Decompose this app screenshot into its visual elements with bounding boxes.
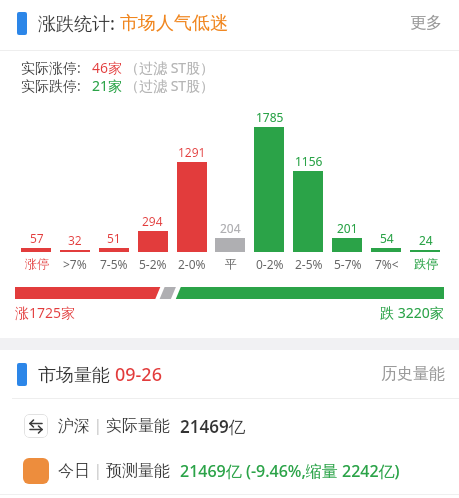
staticText: 46家 (92, 58, 123, 77)
staticText: 涨停 (25, 256, 49, 271)
staticText: 市场量能 (38, 362, 115, 387)
staticText: 294 (142, 213, 163, 229)
staticText: ｜ (90, 461, 106, 481)
staticText: （过滤 ST股） (125, 58, 215, 77)
staticText: 历史量能 (381, 364, 445, 384)
button[interactable]: 更多 (410, 13, 442, 33)
staticText: 实际跌停: (21, 76, 81, 95)
staticText: 21469亿 (-9.46%,缩量 2242亿) (180, 460, 400, 482)
staticText: >7% (63, 256, 87, 272)
staticText: 今日 (58, 461, 90, 481)
staticText: 7-5% (100, 256, 128, 272)
staticText: 32 (68, 232, 82, 248)
staticText: 24 (419, 232, 433, 248)
staticText: 09-26 (115, 362, 162, 387)
button[interactable]: 沪深 (0, 408, 459, 444)
staticText: 51 (107, 230, 121, 246)
staticText: 21家 (92, 76, 123, 95)
staticText: 1156 (295, 153, 323, 169)
staticText: 平 (225, 256, 237, 271)
staticText: 5-2% (139, 256, 167, 272)
staticText: 2-0% (178, 256, 206, 272)
staticText: （过滤 ST股） (125, 76, 215, 95)
staticText: 1785 (256, 109, 284, 125)
staticText: 21469亿 (180, 415, 246, 438)
staticText: 市场人气低迷 (120, 12, 228, 35)
button[interactable]: 今日 (0, 453, 459, 489)
staticText: ｜ (90, 416, 106, 436)
staticText: 跌停 (414, 256, 438, 271)
staticText: 54 (380, 230, 394, 246)
staticText: 跌 3220家 (380, 303, 444, 322)
staticText: 2-5% (295, 256, 323, 272)
staticText: 5-7% (334, 256, 362, 272)
staticText: 涨1725家 (15, 303, 76, 322)
staticText: 沪深 (58, 416, 90, 436)
staticText: 0-2% (256, 256, 284, 272)
button[interactable]: 历史量能 (381, 364, 445, 384)
staticText: 7%< (375, 256, 399, 272)
staticText: 204 (220, 220, 241, 236)
staticText: 1291 (178, 144, 206, 160)
staticText: 更多 (410, 13, 442, 33)
staticText: 201 (337, 220, 358, 236)
staticText: 实际量能 (106, 416, 170, 436)
staticText: 57 (30, 230, 44, 246)
staticText: 涨跌统计: (38, 11, 120, 36)
staticText: 预测量能 (106, 461, 170, 481)
staticText: 实际涨停: (21, 58, 81, 77)
